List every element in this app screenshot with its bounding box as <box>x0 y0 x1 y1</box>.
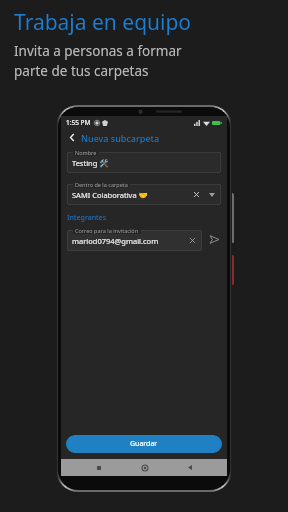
button[interactable]: Back <box>66 131 79 144</box>
button[interactable]: Clear <box>192 190 201 199</box>
staticText: Integrantes <box>67 213 107 223</box>
staticText: Dentro de la carpeta <box>75 181 128 188</box>
button[interactable]: Testing 🛠 <box>67 152 221 173</box>
button[interactable]: Recents <box>90 459 107 476</box>
staticText: 1:55 PM <box>66 118 91 127</box>
button[interactable]: Back <box>181 459 198 476</box>
button[interactable]: mariod0794@gmail.com <box>67 230 202 251</box>
staticText: Nombre <box>75 149 97 156</box>
button[interactable]: Send invitation <box>207 232 221 246</box>
button[interactable]: Guardar <box>66 435 222 453</box>
staticText: Nueva subcarpeta <box>81 132 160 144</box>
staticText: SAMI Colaborativa 🤝 <box>72 190 148 200</box>
staticText: mariod0794@gmail.com <box>72 236 159 246</box>
button[interactable]: Open dropdown <box>207 190 216 199</box>
staticText: Guardar <box>130 439 158 449</box>
button[interactable]: Clear email <box>188 236 197 245</box>
staticText: Invita a personas a formar <box>14 42 182 60</box>
staticText: parte de tus carpetas <box>14 62 149 80</box>
button[interactable]: SAMI Colaborativa 🤝 <box>67 184 221 205</box>
staticText: Testing 🛠 <box>72 158 109 168</box>
staticText: Trabaja en equipo <box>14 8 192 37</box>
button[interactable]: Home <box>136 459 153 476</box>
staticText: Correo para la invitación <box>75 227 139 234</box>
